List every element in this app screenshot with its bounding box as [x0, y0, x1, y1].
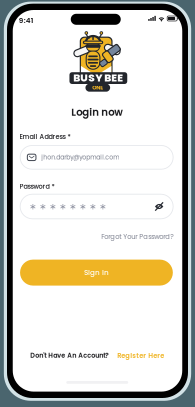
staticText: Sign In	[84, 268, 109, 278]
staticText: Login now	[71, 105, 123, 119]
staticText: BUSY BEE	[73, 70, 123, 85]
staticText: Forgot Your Password?	[101, 232, 173, 241]
staticText: ∗ ∗ ∗ ∗ ∗ ∗ ∗ ∗	[29, 201, 106, 212]
staticText: Don't Have An Account?	[30, 351, 108, 360]
staticText: 9:41	[19, 16, 34, 26]
staticText: Password *	[19, 182, 54, 191]
staticText: jhon.darby@yopmail.com	[41, 153, 119, 162]
button[interactable]: Forgot Your Password?	[101, 232, 173, 241]
staticText: ONE	[92, 84, 103, 92]
staticText: Email Address *	[19, 132, 70, 141]
button[interactable]: jhon.darby@yopmail.com	[20, 145, 173, 169]
button[interactable]: Sign In	[20, 260, 173, 286]
button[interactable]: ∗ ∗ ∗ ∗ ∗ ∗ ∗ ∗	[20, 194, 173, 219]
button[interactable]: Register Here	[117, 351, 164, 360]
staticText: Register Here	[117, 351, 164, 360]
